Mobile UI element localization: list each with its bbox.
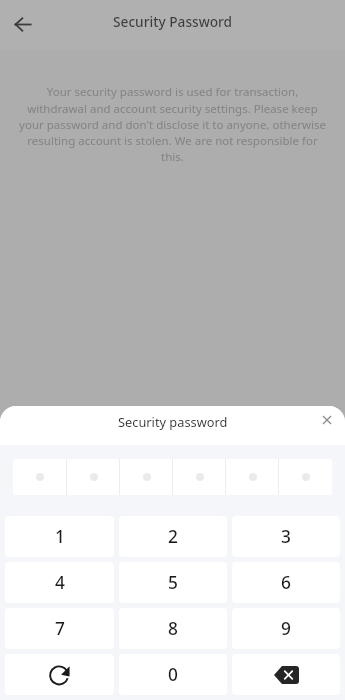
button[interactable]: Back	[7, 8, 39, 40]
staticText: Your security password is used for trans…	[19, 84, 326, 164]
button[interactable]: 3	[232, 516, 340, 557]
button[interactable]: Backspace	[232, 654, 340, 695]
staticText: 8	[168, 617, 178, 641]
button[interactable]: 4	[5, 562, 114, 603]
staticText: 6	[281, 571, 291, 595]
button[interactable]: 8	[119, 608, 227, 649]
button[interactable]	[13, 459, 67, 495]
staticText: 4	[55, 571, 65, 595]
button[interactable]: 2	[119, 516, 227, 557]
button[interactable]: 1	[5, 516, 114, 557]
button[interactable]: 7	[5, 608, 114, 649]
button[interactable]: 9	[232, 608, 340, 649]
button[interactable]: 6	[232, 562, 340, 603]
staticText: Security Password	[113, 12, 233, 31]
button[interactable]	[279, 459, 332, 495]
staticText: Security password	[118, 413, 228, 430]
staticText: 2	[168, 525, 178, 549]
staticText: 3	[281, 525, 291, 549]
button[interactable]	[120, 459, 173, 495]
button[interactable]: 0	[119, 654, 227, 695]
staticText: 7	[55, 617, 65, 641]
button[interactable]: 5	[119, 562, 227, 603]
button[interactable]	[226, 459, 279, 495]
staticText: 9	[281, 617, 291, 641]
button[interactable]	[67, 459, 120, 495]
button[interactable]	[173, 459, 226, 495]
staticText: 0	[168, 663, 178, 687]
staticText: 1	[55, 525, 65, 549]
staticText: 5	[168, 571, 178, 595]
button[interactable]: Reset	[5, 654, 114, 695]
button[interactable]: Close	[314, 407, 340, 433]
